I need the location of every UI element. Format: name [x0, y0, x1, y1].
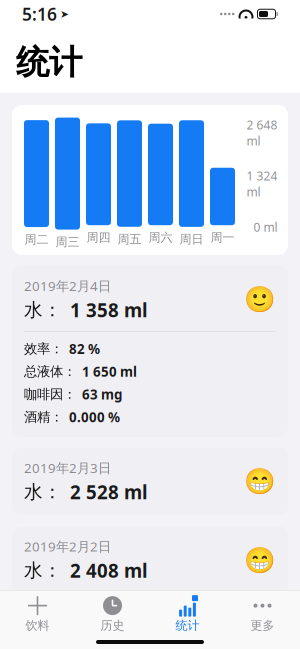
staticText: 0 ml [253, 219, 277, 235]
staticText: 咖啡因： [24, 386, 76, 402]
staticText: 1 324 ml [246, 168, 277, 200]
button[interactable]: 统计 [150, 591, 225, 635]
button[interactable]: 2019年2月1日 [12, 605, 288, 649]
staticText: 总液体： [24, 363, 76, 380]
staticText: 2019年2月1日 [24, 616, 111, 634]
button[interactable]: 2019年2月4日 [12, 266, 288, 437]
staticText: 更多 [250, 618, 274, 633]
button[interactable]: 历史 [75, 591, 150, 635]
staticText: 周三 [55, 235, 79, 249]
staticText: 0.000 % [69, 408, 120, 426]
staticText: 周二 [24, 232, 48, 247]
staticText: 历史 [100, 618, 124, 633]
staticText: 5:16 [22, 2, 57, 25]
staticText: 酒精： [24, 409, 63, 425]
button[interactable]: 更多 [225, 591, 300, 635]
staticText: 1 650 ml [82, 363, 137, 380]
staticText: 周日 [179, 232, 203, 247]
staticText: 2 648 ml [246, 117, 277, 149]
staticText: 水： [24, 480, 62, 503]
staticText: 63 mg [82, 385, 122, 403]
staticText: 统计 [16, 42, 82, 83]
staticText: 😁 [244, 546, 276, 574]
staticText: 周五 [117, 232, 141, 246]
staticText: 1 358 ml [70, 298, 148, 322]
staticText: 2019年2月3日 [24, 459, 111, 477]
button[interactable]: 饮料 [0, 591, 75, 635]
staticText: 😁 [244, 467, 276, 496]
staticText: 2019年2月4日 [24, 277, 111, 295]
staticText: ➤ [60, 8, 69, 20]
staticText: 82 % [69, 340, 100, 358]
staticText: 效率： [24, 341, 63, 357]
staticText: 水： [24, 559, 62, 582]
button[interactable]: 2019年2月3日 [12, 448, 288, 515]
staticText: 统计 [175, 618, 199, 633]
staticText: 周四 [86, 230, 110, 245]
staticText: 2 408 ml [70, 558, 148, 583]
staticText: 🙂 [244, 285, 276, 314]
staticText: 饮料 [25, 618, 49, 633]
staticText: 周一 [210, 230, 234, 245]
staticText: 2019年2月2日 [24, 537, 111, 555]
staticText: 😁 [244, 624, 276, 649]
button[interactable]: 2019年2月2日 [12, 526, 288, 594]
staticText: 水： [24, 299, 62, 321]
staticText: 2 516 ml [70, 637, 148, 649]
staticText: 周六 [148, 230, 172, 245]
staticText: 2 528 ml [70, 480, 148, 504]
